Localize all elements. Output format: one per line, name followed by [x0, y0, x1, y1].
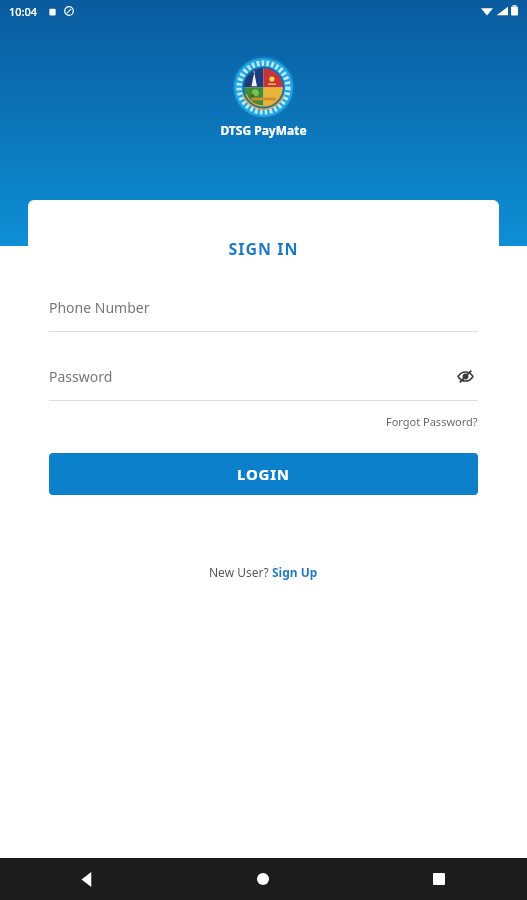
button[interactable]: Password [49, 363, 452, 389]
staticText: SIGN IN [228, 238, 299, 260]
button[interactable]: Phone Number [49, 294, 478, 332]
staticText: Phone Number [49, 298, 150, 317]
staticText: DTSG PayMate [220, 122, 307, 138]
button[interactable]: Toggle password visibility [452, 363, 478, 389]
staticText: Sign Up [272, 564, 318, 580]
button[interactable]: LOGIN [49, 453, 478, 495]
staticText: New User? [209, 564, 272, 580]
button[interactable]: Back [0, 858, 175, 900]
staticText: Forgot Password? [386, 414, 478, 429]
staticText: Password [49, 367, 113, 386]
button[interactable]: Recent apps [351, 858, 527, 900]
button[interactable]: Sign Up [272, 564, 318, 580]
button[interactable]: Home [175, 858, 351, 900]
staticText: 10:04 [9, 4, 38, 19]
staticText: LOGIN [237, 464, 290, 484]
button[interactable]: Forgot Password? [386, 414, 478, 429]
